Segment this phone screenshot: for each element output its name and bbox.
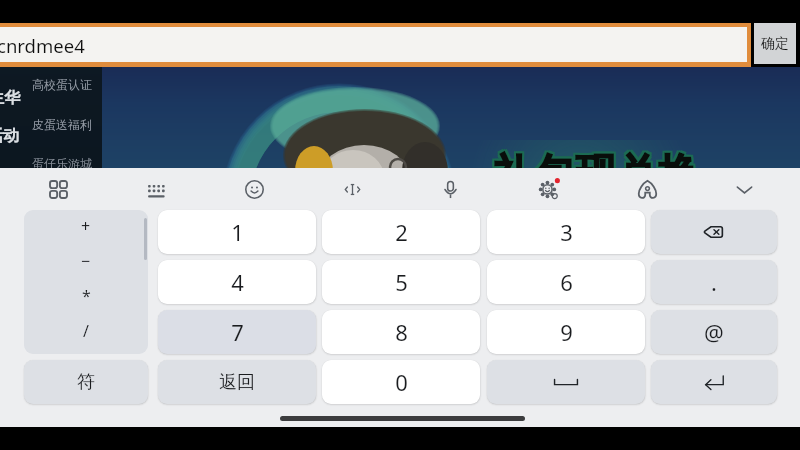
button[interactable]: 5 — [322, 260, 480, 304]
staticText: 5 — [395, 267, 408, 297]
staticText: 礼包现兑换 — [491, 147, 697, 199]
staticText: @ — [704, 317, 724, 347]
staticText: 高校蛋认证 — [32, 77, 92, 92]
staticText: − — [81, 250, 91, 272]
button[interactable]: cnrdmee4 — [0, 27, 747, 62]
staticText: 返回 — [219, 371, 255, 394]
staticText: cnrdmee4 — [0, 33, 85, 58]
staticText: 符 — [77, 371, 95, 394]
button[interactable]: 0 — [322, 360, 480, 404]
other: Space — [553, 369, 579, 395]
button[interactable]: Voice input — [429, 168, 471, 210]
staticText: 生华 — [0, 88, 20, 108]
button[interactable]: 确定 — [754, 23, 796, 64]
other: Backspace — [703, 221, 725, 243]
button[interactable]: Account — [626, 168, 668, 210]
button[interactable]: 7 — [158, 310, 316, 354]
button[interactable]: Emoji — [233, 168, 275, 210]
staticText: 礼包现兑换 — [491, 149, 697, 201]
button[interactable]: Enter — [651, 360, 777, 404]
staticText: 3 — [560, 217, 573, 247]
button[interactable]: 8 — [322, 310, 480, 354]
button[interactable]: Backspace — [651, 210, 777, 254]
staticText: 礼包现兑换 — [495, 147, 701, 199]
button[interactable]: 1 — [158, 210, 316, 254]
staticText: 0 — [395, 367, 408, 397]
staticText: 6 — [560, 267, 573, 297]
staticText: * — [82, 285, 91, 307]
button[interactable]: Move cursor — [331, 168, 373, 210]
button[interactable]: 2 — [322, 210, 480, 254]
staticText: 礼包现兑换 — [493, 149, 699, 201]
button[interactable]: Apps — [37, 168, 79, 210]
staticText: 2 — [395, 217, 408, 247]
staticText: 1 — [231, 217, 244, 247]
button[interactable]: Hide keyboard — [723, 168, 765, 210]
button[interactable]: . — [651, 260, 777, 304]
button[interactable]: Settings — [528, 168, 570, 210]
staticText: 礼包现兑换 — [493, 151, 699, 203]
staticText: 确定 — [761, 35, 789, 53]
staticText: 9 — [560, 317, 573, 347]
button[interactable]: + — [24, 210, 148, 354]
staticText: 皮蛋送福利 — [32, 117, 92, 132]
staticText: 4 — [231, 267, 244, 297]
button[interactable]: Switch keyboard — [134, 168, 176, 210]
button[interactable]: 4 — [158, 260, 316, 304]
button[interactable]: 返回 — [158, 360, 316, 404]
other: Enter — [703, 371, 725, 393]
staticText: . — [711, 267, 717, 297]
button[interactable]: 3 — [487, 210, 645, 254]
button[interactable]: 9 — [487, 310, 645, 354]
staticText: 礼包现兑换 — [495, 151, 701, 203]
button[interactable]: Space — [487, 360, 645, 404]
staticText: 礼包现兑换 — [491, 151, 697, 203]
staticText: 蛋仔乐游城 — [32, 156, 92, 171]
staticText: 8 — [395, 317, 408, 347]
staticText: 7 — [231, 317, 244, 347]
staticText: 礼包现兑换 — [495, 149, 701, 201]
staticText: 活动 — [0, 126, 19, 146]
button[interactable]: 6 — [487, 260, 645, 304]
button[interactable]: 符 — [24, 360, 148, 404]
button[interactable]: @ — [651, 310, 777, 354]
staticText: / — [83, 320, 89, 342]
staticText: + — [81, 215, 91, 237]
staticText: 礼包现兑换 — [493, 147, 699, 199]
